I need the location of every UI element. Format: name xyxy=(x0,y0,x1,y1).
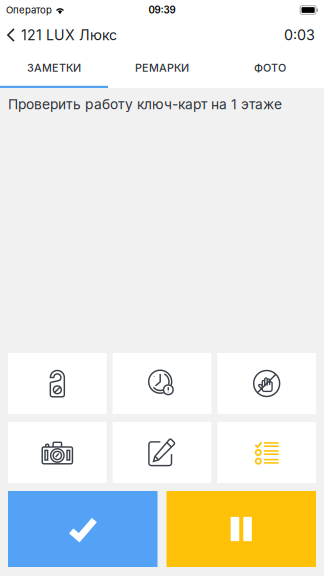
staticText: ФОТО xyxy=(254,61,286,74)
staticText: 121 LUX Люкс xyxy=(21,26,117,43)
staticText: 0:03 xyxy=(284,26,315,44)
button[interactable]: ФОТО xyxy=(216,50,324,88)
button[interactable]: ЗАМЕТКИ xyxy=(0,50,108,88)
button[interactable]: Checklist xyxy=(217,422,316,483)
staticText: РЕМАРКИ xyxy=(135,61,189,74)
staticText: ЗАМЕТКИ xyxy=(27,61,81,74)
button[interactable]: Delay xyxy=(113,353,211,414)
button[interactable]: РЕМАРКИ xyxy=(108,50,216,88)
staticText: Оператор xyxy=(6,4,52,16)
button[interactable]: Photo xyxy=(8,422,107,483)
button[interactable]: Complete xyxy=(8,491,157,567)
button[interactable]: Do not disturb xyxy=(8,353,107,414)
button[interactable]: 121 LUX Люкс xyxy=(0,20,127,49)
button[interactable]: Pause xyxy=(166,491,316,567)
staticText: Проверить работу ключ-карт на 1 этаже xyxy=(8,96,282,113)
staticText: 09:39 xyxy=(148,4,175,16)
button[interactable]: Do not enter xyxy=(217,353,316,414)
button[interactable]: Note xyxy=(113,422,211,483)
